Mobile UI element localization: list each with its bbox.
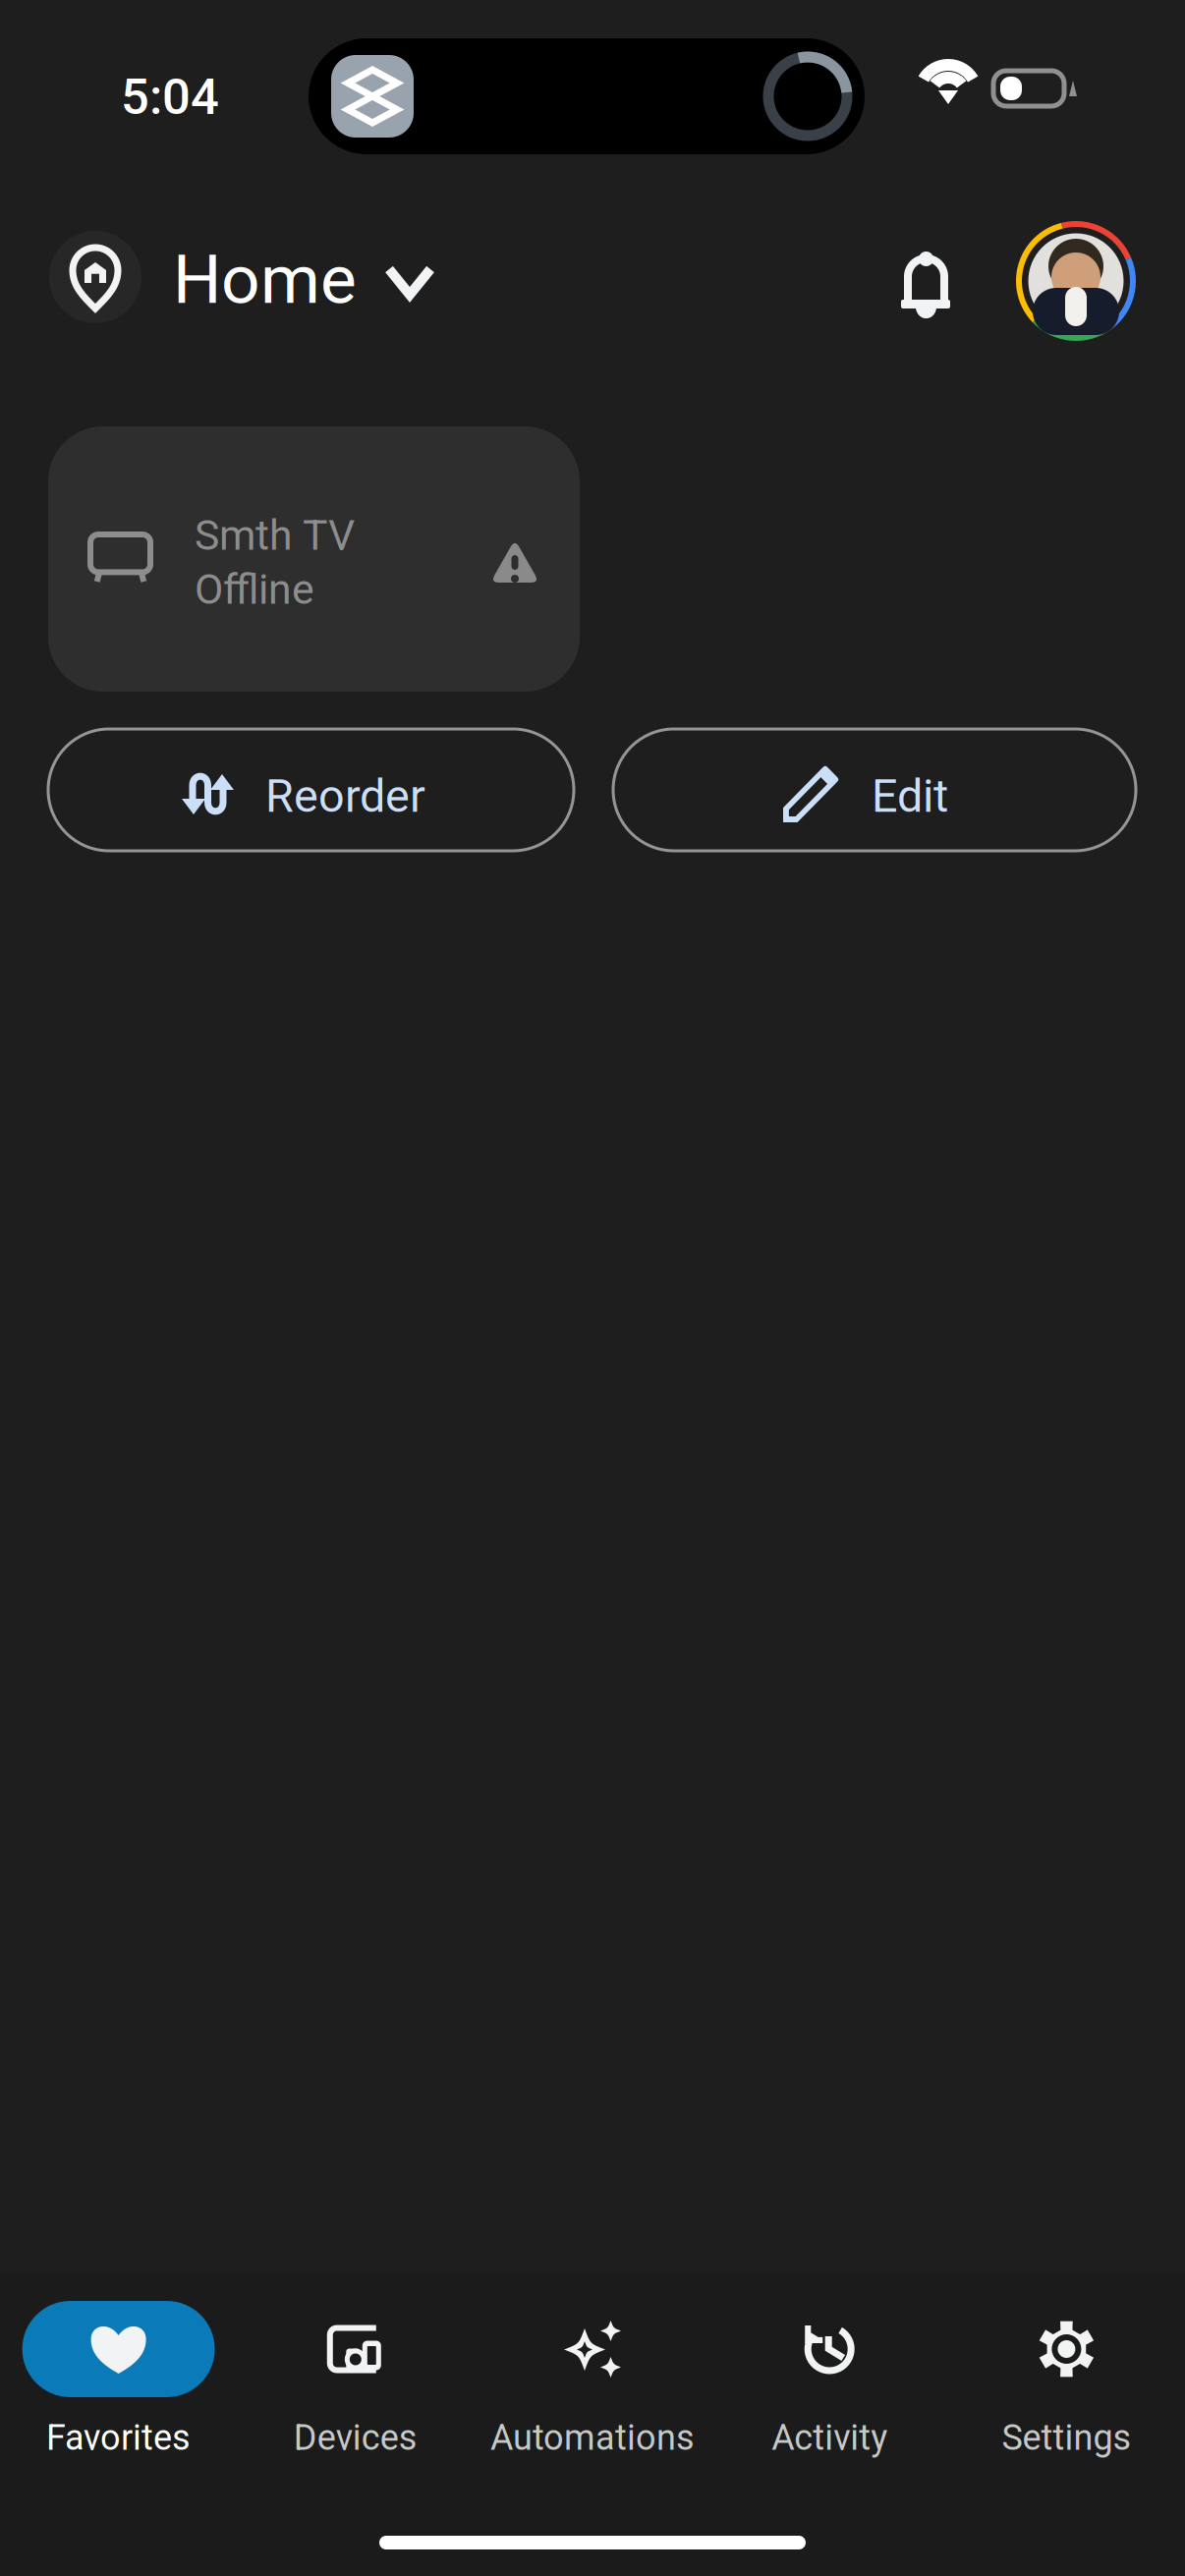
button[interactable]: Settings xyxy=(948,2301,1185,2488)
staticText: Home xyxy=(173,240,357,319)
staticText: Activity xyxy=(772,2417,887,2458)
staticText: 5:04 xyxy=(121,68,219,126)
button[interactable]: Devices xyxy=(237,2301,474,2488)
staticText: Edit xyxy=(872,769,948,823)
staticText: Reorder xyxy=(265,769,425,823)
button[interactable]: Home xyxy=(49,231,442,325)
staticText: Devices xyxy=(294,2417,417,2458)
button[interactable]: Smth TV xyxy=(48,426,580,692)
staticText: Automations xyxy=(490,2417,695,2458)
staticText: Favorites xyxy=(46,2417,191,2458)
button[interactable]: Edit xyxy=(613,729,1136,851)
button[interactable]: Activity xyxy=(711,2301,948,2488)
button[interactable]: Reorder xyxy=(48,729,574,851)
staticText: Settings xyxy=(1002,2417,1131,2458)
button[interactable]: Automations xyxy=(474,2301,711,2488)
button[interactable]: Account xyxy=(1019,224,1133,338)
button[interactable]: Favorites xyxy=(0,2301,237,2488)
staticText: Smth TV xyxy=(195,511,355,560)
button[interactable]: Notifications xyxy=(898,250,975,334)
staticText: Offline xyxy=(195,565,314,614)
